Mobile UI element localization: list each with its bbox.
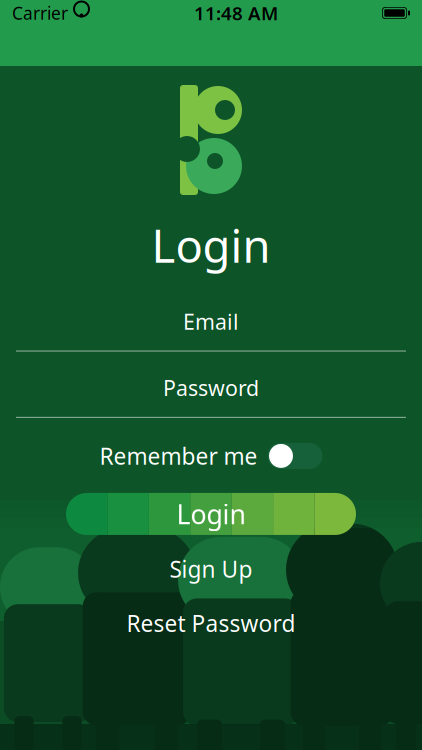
staticText: Login bbox=[151, 215, 270, 275]
staticText: Login bbox=[176, 496, 245, 532]
staticText: Carrier bbox=[12, 1, 68, 24]
button[interactable]: Sign Up bbox=[145, 547, 276, 591]
staticText: 11:48 AM bbox=[194, 1, 278, 25]
button[interactable]: Remember me bbox=[99, 437, 322, 475]
staticText: Email bbox=[183, 307, 239, 335]
staticText: Reset Password bbox=[126, 608, 295, 638]
staticText: Remember me bbox=[99, 441, 257, 471]
staticText: Sign Up bbox=[169, 554, 252, 584]
button[interactable]: Reset Password bbox=[102, 601, 319, 645]
button[interactable]: Login bbox=[0, 493, 422, 535]
staticText: Password bbox=[163, 373, 259, 402]
